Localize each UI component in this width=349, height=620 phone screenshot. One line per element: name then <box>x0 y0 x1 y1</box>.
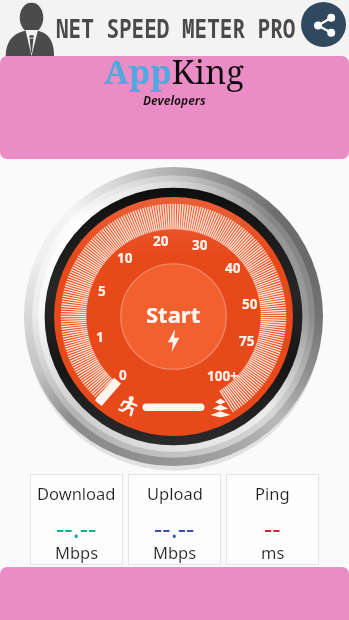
button[interactable]: Start speed test <box>24 167 323 466</box>
staticText: Mbps <box>153 541 197 563</box>
staticText: AppKing <box>104 56 245 94</box>
staticText: Download <box>37 482 116 504</box>
staticText: Developers <box>143 92 206 108</box>
staticText: Ping <box>255 482 290 504</box>
staticText: ms <box>261 541 285 563</box>
staticText: -- <box>264 510 281 545</box>
staticText: 75 <box>239 332 255 350</box>
staticText: Mbps <box>55 541 99 563</box>
button[interactable] <box>0 567 349 620</box>
staticText: 100+ <box>207 367 238 385</box>
button[interactable]: Upload <box>128 474 221 565</box>
staticText: NET SPEED METER PRO <box>56 10 296 47</box>
button[interactable]: Ping <box>226 474 319 565</box>
staticText: Upload <box>147 482 203 504</box>
button[interactable]: AppKing <box>0 56 349 159</box>
staticText: 40 <box>225 259 241 277</box>
staticText: 30 <box>192 236 208 254</box>
staticText: 20 <box>153 232 169 250</box>
staticText: 1 <box>96 328 104 346</box>
staticText: Start <box>146 299 201 329</box>
button[interactable]: Download <box>30 474 123 565</box>
staticText: --.-- <box>154 510 195 545</box>
staticText: 50 <box>242 295 258 313</box>
staticText: --.-- <box>56 510 97 545</box>
button[interactable]: Share <box>301 2 346 47</box>
staticText: 5 <box>98 282 106 300</box>
staticText: 0 <box>119 366 127 384</box>
staticText: 10 <box>117 249 133 267</box>
